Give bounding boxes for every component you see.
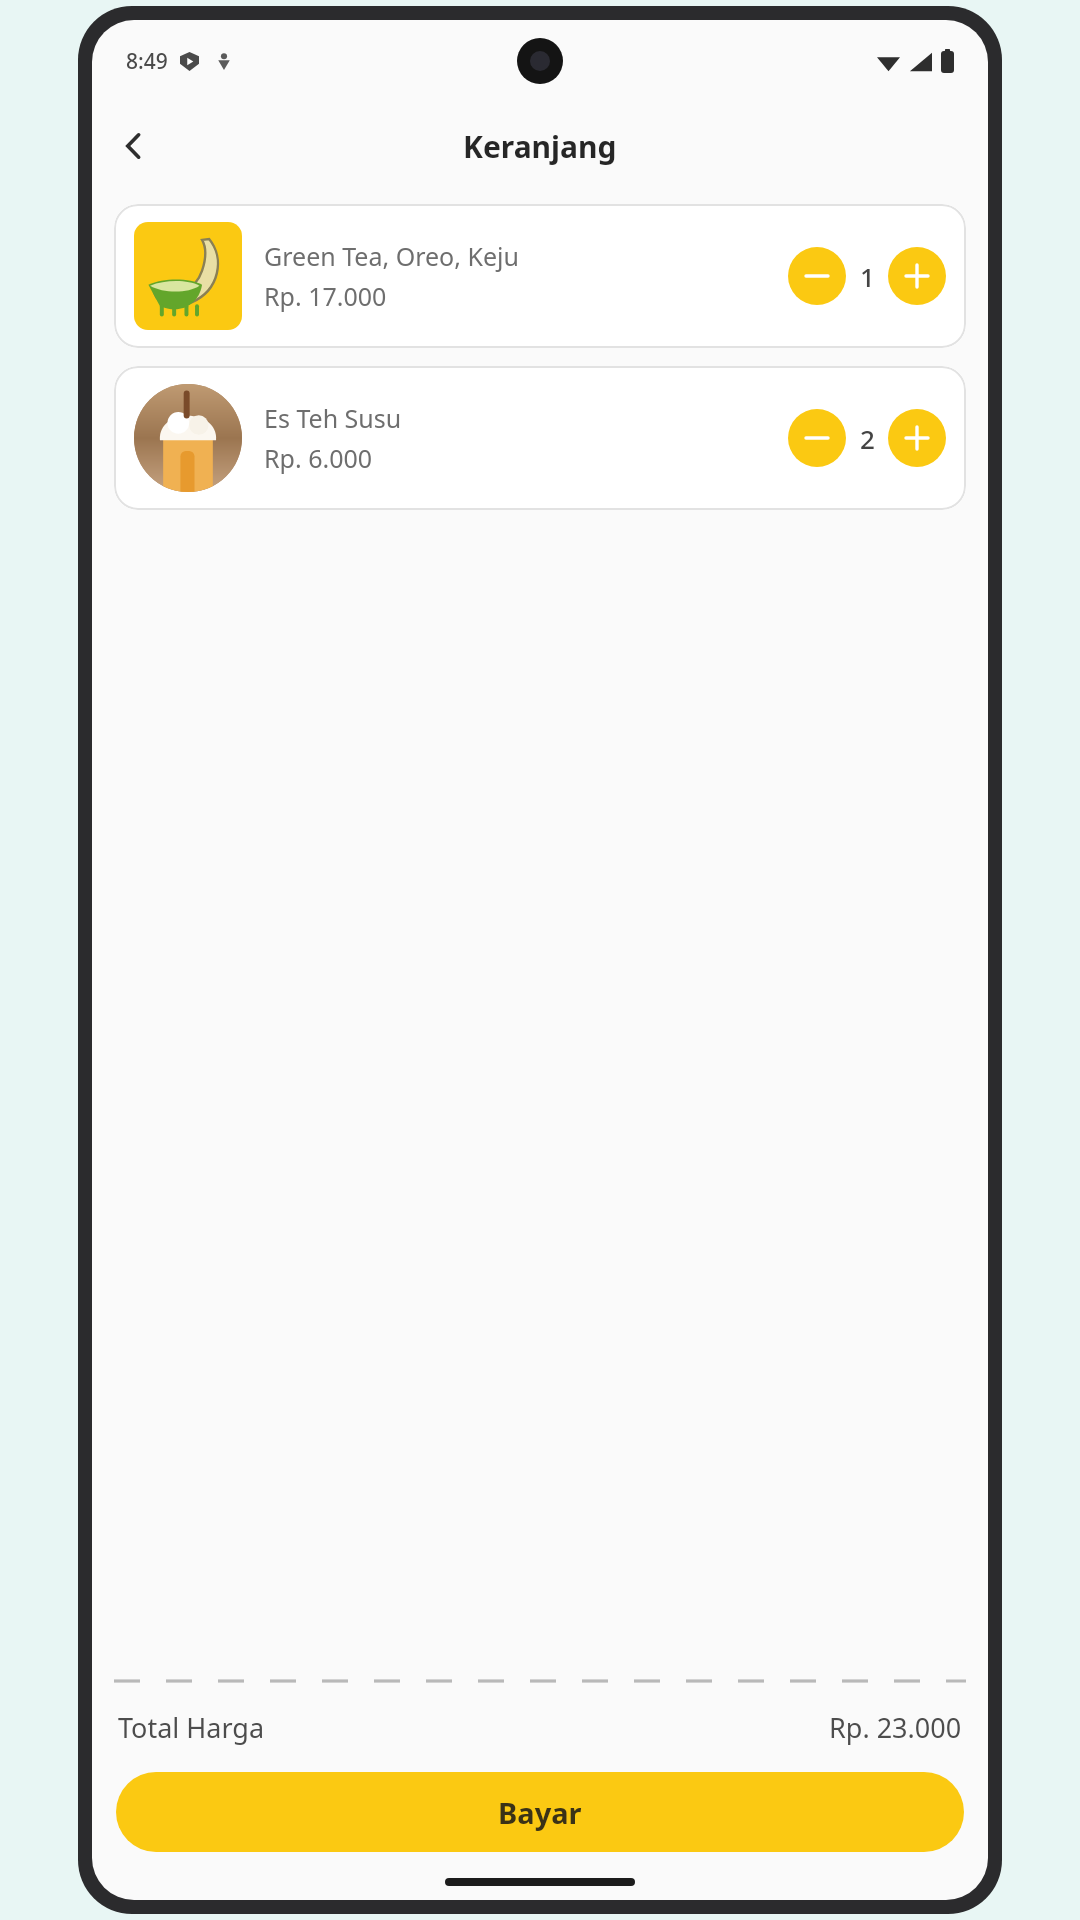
staticText: Total Harga: [118, 1709, 265, 1746]
button[interactable]: Bayar: [116, 1772, 964, 1852]
staticText: Bayar: [498, 1793, 582, 1832]
button[interactable]: Decrease quantity: [788, 409, 846, 467]
button[interactable]: Increase quantity: [888, 247, 946, 305]
staticText: Rp. 23.000: [829, 1709, 962, 1746]
button[interactable]: Es Teh Susu: [114, 366, 966, 510]
staticText: 8:49: [126, 47, 168, 76]
button[interactable]: Green Tea, Oreo, Keju: [114, 204, 966, 348]
staticText: Green Tea, Oreo, Keju: [264, 239, 519, 273]
button[interactable]: Back: [102, 114, 166, 178]
staticText: Es Teh Susu: [264, 401, 402, 435]
button[interactable]: Increase quantity: [888, 409, 946, 467]
staticText: Keranjang: [463, 126, 617, 167]
staticText: 2: [860, 421, 875, 456]
button[interactable]: Decrease quantity: [788, 247, 846, 305]
staticText: 1: [860, 259, 875, 294]
staticText: Rp. 6.000: [264, 441, 373, 475]
staticText: Rp. 17.000: [264, 279, 387, 313]
